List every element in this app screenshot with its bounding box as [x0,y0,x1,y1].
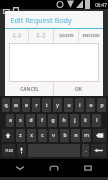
staticText: g [51,117,55,124]
button[interactable]: j [70,114,79,127]
staticText: ENCODE [82,33,100,39]
staticText: i [79,102,81,109]
staticText: [...] [37,32,45,39]
staticText: h [62,117,66,124]
button[interactable]: o [86,98,95,112]
button[interactable]: ?123 [2,144,15,157]
button[interactable] [9,43,99,82]
button[interactable]: Recents [74,159,102,177]
staticText: m [84,132,89,139]
button[interactable]: q [2,98,10,112]
staticText: o [89,102,93,109]
staticText: y [56,102,59,109]
button[interactable]: r [32,98,40,112]
staticText: ?123 [5,148,13,153]
staticText: v [52,132,55,139]
staticText: u [67,102,71,109]
button[interactable]: b [60,129,69,142]
button[interactable]: Shift [2,129,14,142]
button[interactable]: . [82,144,89,157]
button[interactable]: a [6,114,14,127]
staticText: c [41,132,44,139]
staticText: {...} [13,32,21,39]
staticText: e [25,102,28,109]
staticText: d [29,117,33,124]
button[interactable]: CANCEL [5,82,53,96]
button[interactable]: t [42,98,51,112]
staticText: t [46,102,48,109]
staticText: CANCEL [20,86,39,93]
button[interactable]: Home [40,159,68,177]
button[interactable]: d [26,114,35,127]
staticText: . [85,148,87,153]
button[interactable]: s [16,114,24,127]
button[interactable]: i [75,98,84,112]
button[interactable]: OK [54,82,103,96]
staticText: b [63,132,67,139]
button[interactable]: m [82,129,91,142]
staticText: 00:47 [95,2,107,8]
button[interactable]: w [12,98,20,112]
button[interactable]: Insert brackets [29,29,53,42]
button[interactable]: k [81,114,90,127]
button[interactable]: Enter [91,144,106,157]
staticText: z [19,132,22,139]
button[interactable]: u [64,98,73,112]
button[interactable]: z [16,129,25,142]
staticText: r [35,102,38,109]
button[interactable]: Voice input [17,144,26,157]
button[interactable]: e [22,98,30,112]
staticText: f [41,117,43,124]
button[interactable]: Insert braces [5,29,28,42]
button[interactable]: f [37,114,46,127]
staticText: QUOTE [59,33,74,39]
button[interactable]: h [59,114,68,127]
staticText: l [96,117,98,124]
button[interactable]: p [97,98,106,112]
button[interactable]: g [48,114,57,127]
staticText: s [19,117,22,124]
staticText: n [74,132,78,139]
button[interactable]: Delete [93,129,106,142]
staticText: OK [75,86,82,93]
button[interactable]: x [27,129,36,142]
button[interactable]: y [53,98,62,112]
staticText: a [9,117,12,124]
staticText: p [100,102,104,109]
staticText: j [74,117,76,124]
button[interactable]: v [49,129,58,142]
staticText: x [30,132,33,139]
staticText: Edit Request Body [10,15,72,25]
button[interactable]: c [38,129,47,142]
button[interactable]: l [92,114,101,127]
button[interactable]: Hide keyboard [6,159,34,177]
button[interactable]: n [71,129,80,142]
staticText: k [84,117,87,124]
staticText: w [14,102,18,109]
staticText: q [4,102,8,109]
button[interactable]: ENCODE [79,29,103,42]
button[interactable]: QUOTE [54,29,78,42]
